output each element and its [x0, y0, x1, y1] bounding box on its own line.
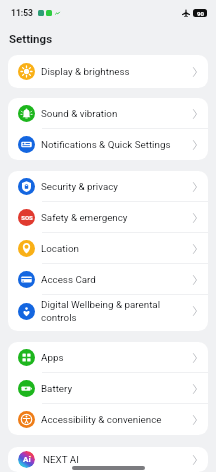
- button[interactable]: Notifications & Quick Settings: [8, 129, 208, 160]
- button[interactable]: Location: [8, 233, 208, 264]
- staticText: Security & privacy: [41, 181, 189, 192]
- button[interactable]: Sound & vibration: [8, 98, 208, 129]
- staticText: Apps: [41, 352, 189, 363]
- button[interactable]: Digital Wellbeing & parental controls: [8, 295, 208, 331]
- button[interactable]: Apps: [8, 342, 208, 373]
- button[interactable]: Security & privacy: [8, 171, 208, 202]
- staticText: Accessibility & convenience: [41, 414, 189, 425]
- staticText: Location: [41, 243, 189, 254]
- staticText: SOS: [21, 214, 33, 221]
- button[interactable]: Access Card: [8, 264, 208, 295]
- staticText: Safety & emergency: [41, 212, 189, 223]
- button[interactable]: Display & brightness: [8, 55, 208, 88]
- staticText: Sound & vibration: [41, 108, 189, 119]
- button[interactable]: Ai: [8, 447, 208, 472]
- staticText: 11:53: [11, 8, 33, 18]
- button[interactable]: SOS: [8, 202, 208, 233]
- staticText: Ai: [23, 455, 31, 464]
- staticText: NEXT AI: [43, 454, 189, 465]
- staticText: Display & brightness: [41, 66, 189, 77]
- button[interactable]: Accessibility & convenience: [8, 404, 208, 435]
- staticText: Notifications & Quick Settings: [41, 139, 189, 150]
- button[interactable]: Battery: [8, 373, 208, 404]
- staticText: Access Card: [41, 274, 189, 285]
- staticText: Settings: [9, 32, 53, 45]
- staticText: 90: [197, 10, 204, 17]
- staticText: Battery: [41, 383, 189, 394]
- staticText: Digital Wellbeing & parental controls: [41, 299, 189, 323]
